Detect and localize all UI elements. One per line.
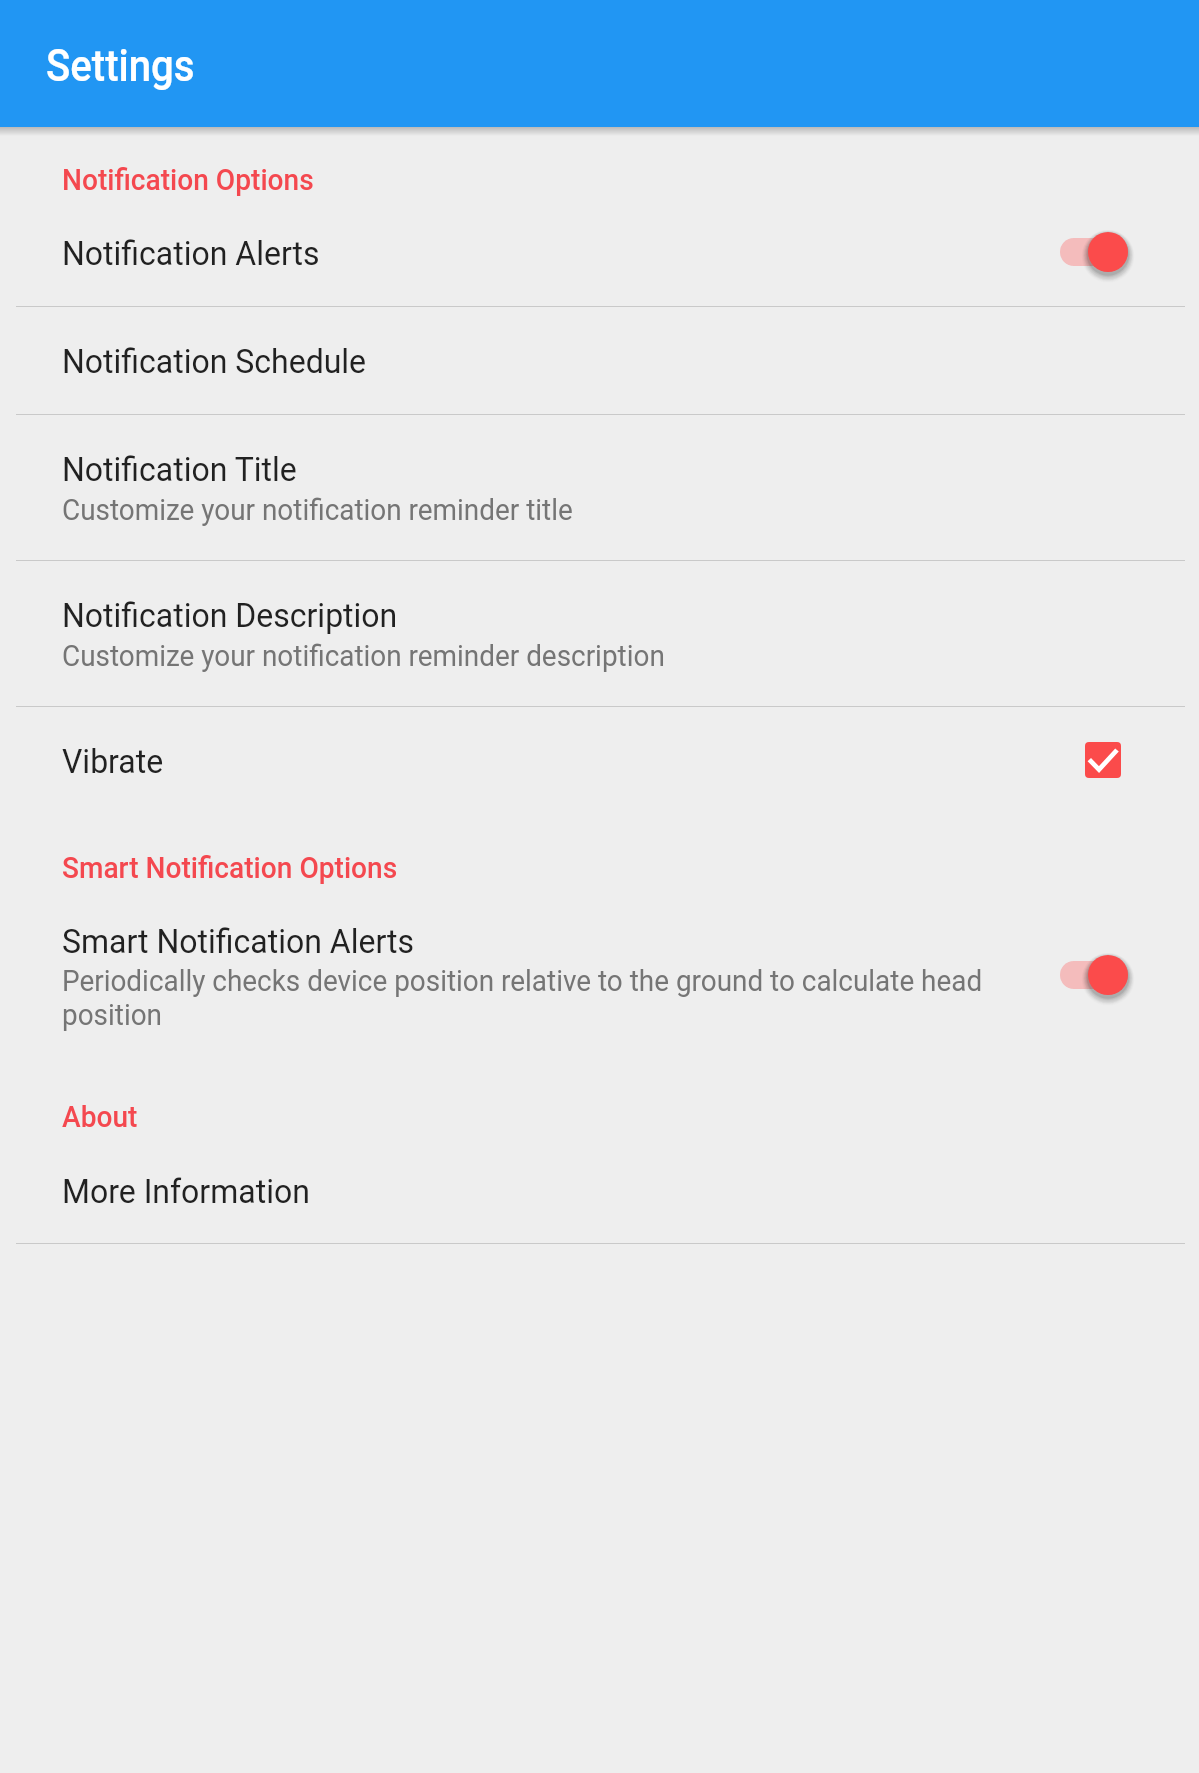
button[interactable]: Toggle switch, on <box>1046 204 1142 300</box>
staticText: About <box>62 1099 138 1134</box>
staticText: Notification Description <box>62 595 398 635</box>
staticText: Notification Options <box>62 162 314 197</box>
staticText: Periodically checks device position rela… <box>62 963 997 1032</box>
staticText: Smart Notification Alerts <box>62 921 415 961</box>
staticText: Notification Alerts <box>62 233 320 273</box>
staticText: Notification Title <box>62 449 297 489</box>
button[interactable]: Vibrate <box>0 706 1199 814</box>
staticText: Customize your notification reminder tit… <box>62 492 573 527</box>
staticText: Vibrate <box>62 741 164 781</box>
staticText: More Information <box>62 1171 310 1211</box>
button[interactable]: Notification Schedule <box>0 306 1199 414</box>
staticText: Smart Notification Options <box>62 850 398 885</box>
staticText: Customize your notification reminder des… <box>62 638 666 673</box>
staticText: Notification Schedule <box>62 341 367 381</box>
button[interactable]: Vibrate, checked <box>1055 712 1151 808</box>
button[interactable]: Notification Alerts <box>0 198 1199 306</box>
button[interactable]: More Information <box>0 1135 1199 1243</box>
staticText: Settings <box>46 40 195 92</box>
button[interactable]: Notification Title <box>0 414 1199 560</box>
button[interactable]: Toggle switch, on <box>1046 927 1142 1023</box>
button[interactable]: Notification Description <box>0 560 1199 706</box>
button[interactable]: Smart Notification Alerts <box>0 886 1199 1063</box>
